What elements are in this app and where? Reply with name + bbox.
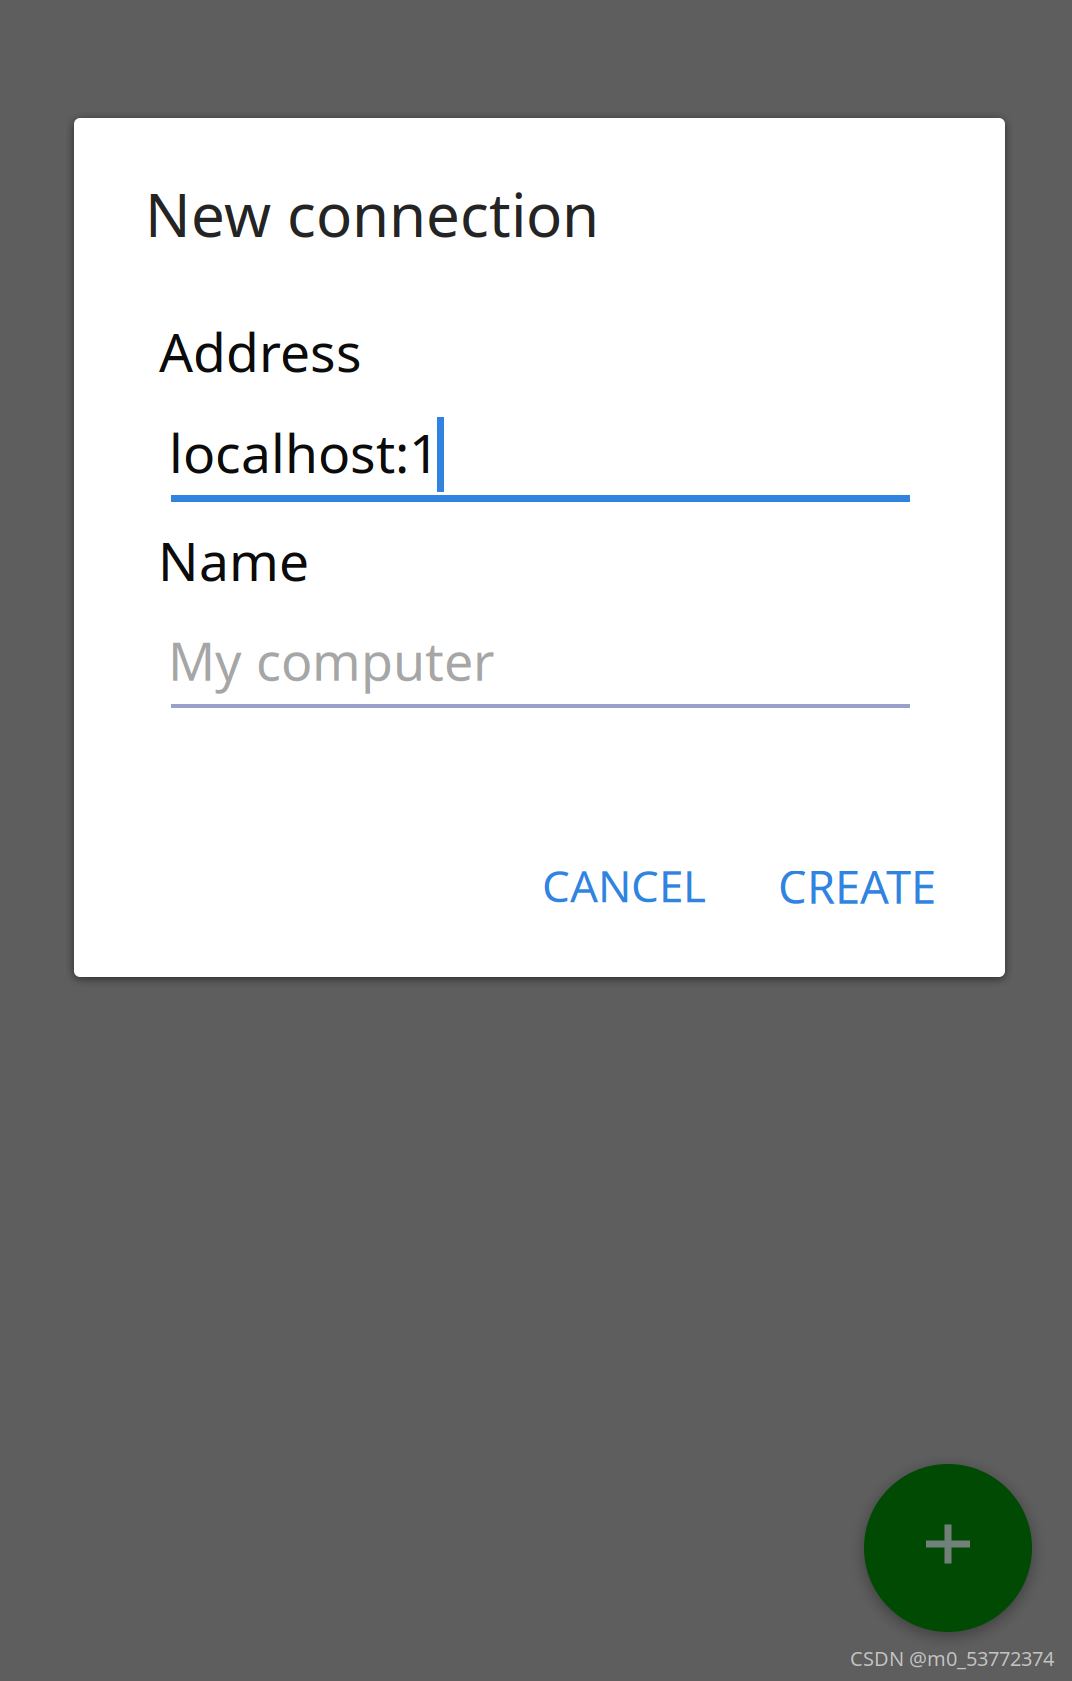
staticText: My computer <box>168 626 494 695</box>
button[interactable]: Add connection <box>864 1464 1032 1632</box>
button[interactable]: CREATE <box>754 828 960 944</box>
staticText: localhost:1 <box>169 417 440 488</box>
button[interactable]: CANCEL <box>518 828 730 942</box>
staticText: Name <box>158 525 309 596</box>
staticText: New connection <box>145 174 599 254</box>
staticText: CSDN @m0_53772374 <box>850 1645 1054 1672</box>
staticText: CREATE <box>778 856 936 916</box>
button[interactable]: Address <box>159 316 912 529</box>
staticText: Address <box>159 316 362 387</box>
staticText: CANCEL <box>542 856 706 914</box>
button[interactable]: Name <box>158 525 911 711</box>
